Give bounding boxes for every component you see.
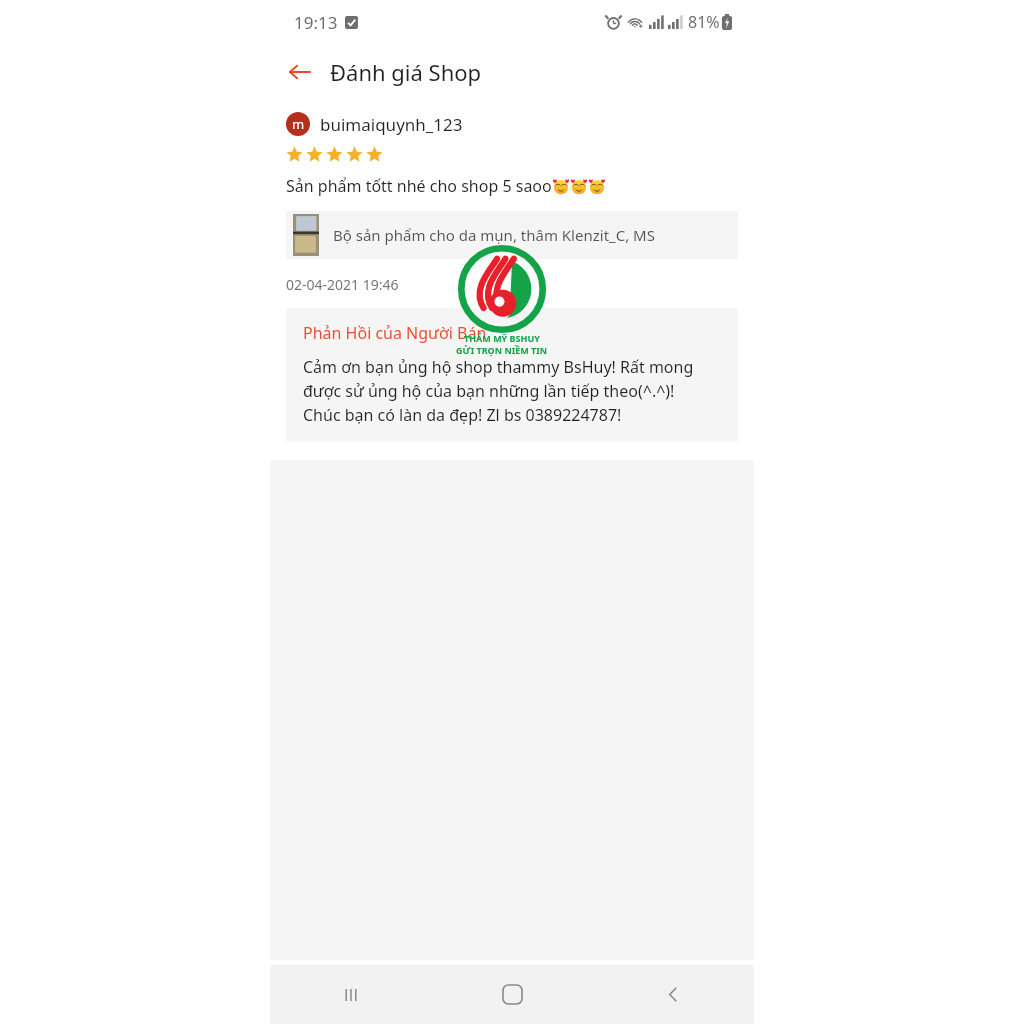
button[interactable]: Recent apps [270, 965, 432, 1024]
staticText: 19:13 [294, 11, 338, 34]
staticText: Sản phẩm tốtt nhé cho shop 5 saoo [286, 175, 552, 197]
button[interactable]: m [270, 108, 754, 140]
staticText: buimaiquynh_123 [320, 113, 463, 136]
staticText: THẨM MỸ BSHUY [464, 332, 540, 344]
staticText: 02-04-2021 19:46 [286, 275, 399, 294]
staticText: Cảm ơn bạn ủng hộ shop thammy BsHuy! Rất… [303, 356, 694, 378]
button[interactable]: Bộ sản phẩm cho da mụn, thâm Klenzit_C, … [286, 211, 738, 259]
button[interactable]: Home [432, 965, 593, 1024]
staticText: được sử ủng hộ của bạn những lần tiếp th… [303, 380, 675, 402]
staticText: 81% [688, 11, 720, 33]
button[interactable]: Phản Hồi của Người Bán [286, 308, 738, 442]
staticText: Đánh giá Shop [330, 57, 482, 87]
staticText: Phản Hồi của Người Bán [303, 322, 487, 344]
staticText: Bộ sản phẩm cho da mụn, thâm Klenzit_C, … [333, 225, 655, 245]
button[interactable]: Back [593, 965, 754, 1024]
staticText: Chúc bạn có làn da đẹp! Zl bs 0389224787… [303, 404, 622, 426]
staticText: GỬI TRỌN NIỀM TIN [456, 344, 548, 356]
staticText: m [292, 115, 305, 133]
button[interactable]: Back [278, 50, 322, 94]
